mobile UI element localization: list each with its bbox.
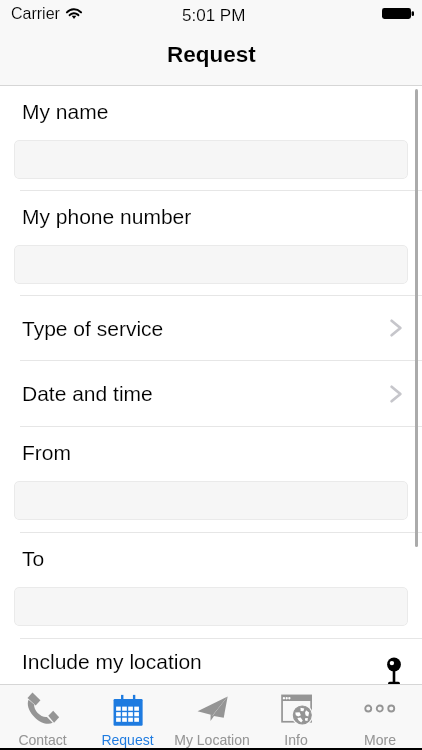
staticText: My phone number xyxy=(22,205,192,228)
staticText: More xyxy=(364,732,396,748)
staticText: My name xyxy=(22,100,109,123)
staticText: Include my location xyxy=(22,650,202,673)
button[interactable]: Info xyxy=(254,685,338,748)
button[interactable]: Date and time xyxy=(0,361,422,426)
staticText: 5:01 PM xyxy=(182,6,246,25)
staticText: Carrier xyxy=(11,5,60,23)
button[interactable]: My name xyxy=(0,86,422,190)
staticText: Request xyxy=(101,732,154,748)
button[interactable]: Include my location xyxy=(0,639,422,684)
staticText: Type of service xyxy=(22,317,164,340)
button[interactable]: More xyxy=(338,685,422,748)
button[interactable]: From xyxy=(0,427,422,532)
button[interactable]: My phone number xyxy=(0,191,422,295)
staticText: From xyxy=(22,441,71,464)
button[interactable]: Request xyxy=(85,685,170,748)
staticText: To xyxy=(22,547,45,570)
staticText: Date and time xyxy=(22,382,153,405)
staticText: Contact xyxy=(18,732,67,748)
staticText: Request xyxy=(167,42,256,67)
other: Battery full xyxy=(382,8,414,19)
button[interactable]: Type of service xyxy=(0,296,422,360)
staticText: My Location xyxy=(174,732,250,748)
other: Use my current location xyxy=(380,651,408,691)
staticText: Info xyxy=(284,732,308,748)
button[interactable]: My Location xyxy=(170,685,254,748)
button[interactable]: To xyxy=(0,533,422,638)
button[interactable]: Contact xyxy=(0,685,85,748)
